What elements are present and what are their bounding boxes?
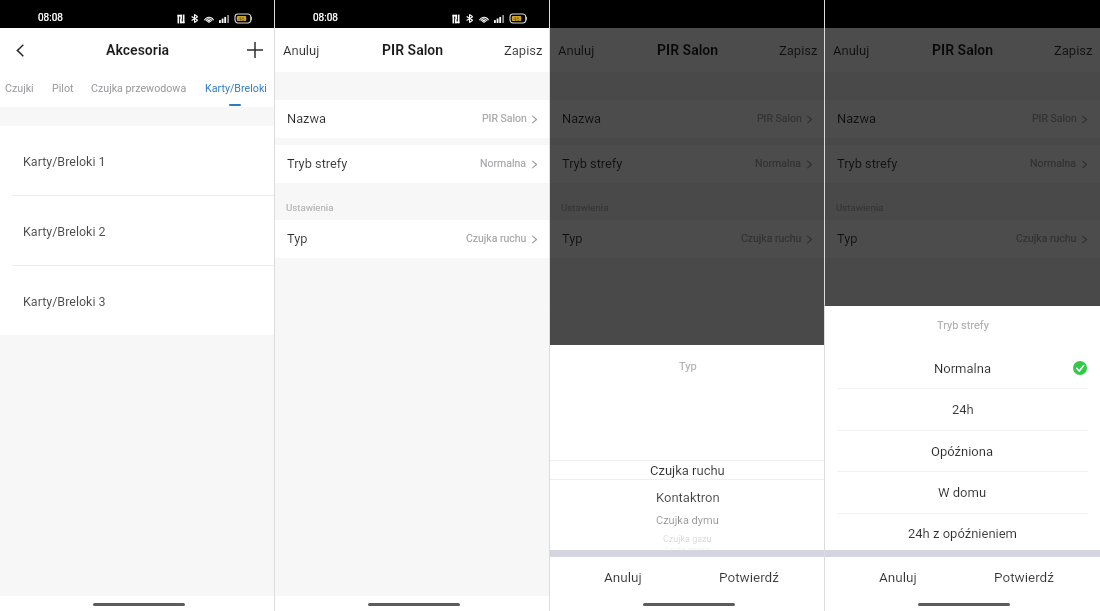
staticText: Potwierdź <box>994 569 1054 585</box>
staticText: 08:08 <box>313 12 338 24</box>
staticText: Nazwa <box>837 111 877 126</box>
staticText: PIR Salon <box>757 112 802 124</box>
staticText: Typ <box>679 360 697 373</box>
staticText: Ustawienia <box>836 202 884 213</box>
staticText: Czujka gazu <box>663 534 712 545</box>
button[interactable]: Karty/Breloki <box>201 72 271 107</box>
staticText: Anuluj <box>833 43 870 58</box>
staticText: Normalna <box>480 157 527 169</box>
staticText: Normalna <box>934 361 991 376</box>
staticText: Karty/Breloki 2 <box>23 224 106 239</box>
staticText: Potwierdź <box>719 569 779 585</box>
staticText: PIR Salon <box>932 42 994 58</box>
staticText: 24h <box>952 402 974 417</box>
button[interactable]: Anuluj <box>275 28 330 72</box>
button[interactable]: Tryb strefy <box>275 145 550 183</box>
button[interactable]: Nazwa <box>550 100 825 138</box>
staticText: PIR Salon <box>1032 112 1077 124</box>
staticText: 24h z opóźnieniem <box>908 526 1018 541</box>
staticText: Czujka ruchu <box>650 463 725 478</box>
staticText: Akcesoria <box>106 42 170 58</box>
staticText: Anuluj <box>558 43 595 58</box>
button[interactable]: Kontaktron <box>550 487 825 507</box>
staticText: Zapisz <box>504 43 543 58</box>
staticText: Czujka dymu <box>656 514 719 527</box>
button[interactable]: Czujka zalania <box>550 540 825 560</box>
button[interactable]: Zapisz <box>495 28 550 72</box>
staticText: Czujka ruchu <box>1016 232 1077 244</box>
button[interactable]: Czujka dymu <box>550 510 825 530</box>
staticText: Normalna <box>755 157 802 169</box>
button[interactable]: Potwierdź <box>699 561 799 595</box>
button[interactable]: Anuluj <box>573 561 673 595</box>
staticText: Typ <box>562 231 583 246</box>
button[interactable]: Normalna <box>825 348 1100 388</box>
staticText: Nazwa <box>287 111 327 126</box>
button[interactable]: W domu <box>825 472 1100 512</box>
staticText: Normalna <box>1030 157 1077 169</box>
button[interactable]: Zapisz <box>770 28 825 72</box>
staticText: PIR Salon <box>482 112 527 124</box>
button[interactable]: Nazwa <box>275 100 550 138</box>
button[interactable]: Nazwa <box>825 100 1100 138</box>
button[interactable]: Anuluj <box>550 28 605 72</box>
staticText: Tryb strefy <box>287 156 348 171</box>
staticText: Anuluj <box>604 569 642 585</box>
staticText: Opóźniona <box>931 444 994 459</box>
button[interactable]: Opóźniona <box>825 431 1100 471</box>
staticText: Tryb strefy <box>562 156 623 171</box>
button[interactable]: Karty/Breloki 1 <box>0 126 275 195</box>
staticText: Anuluj <box>283 43 320 58</box>
staticText: Typ <box>287 231 308 246</box>
staticText: Zapisz <box>1054 43 1093 58</box>
staticText: Pilot <box>52 82 74 95</box>
staticText: Karty/Breloki 3 <box>23 294 106 309</box>
staticText: 46 <box>513 15 520 22</box>
button[interactable]: Typ <box>275 220 550 258</box>
button[interactable]: Typ <box>825 220 1100 258</box>
button[interactable]: Czujka gazu <box>550 529 825 549</box>
staticText: Anuluj <box>879 569 917 585</box>
staticText: Tryb strefy <box>837 156 898 171</box>
button[interactable]: Anuluj <box>848 561 948 595</box>
button[interactable]: Typ <box>550 220 825 258</box>
staticText: Typ <box>837 231 858 246</box>
staticText: Czujka zalania <box>665 546 710 554</box>
button[interactable]: Potwierdź <box>974 561 1074 595</box>
staticText: PIR Salon <box>657 42 719 58</box>
staticText: Nazwa <box>562 111 602 126</box>
staticText: W domu <box>938 485 987 500</box>
button[interactable]: 24h <box>825 389 1100 429</box>
staticText: Ustawienia <box>561 202 609 213</box>
staticText: Karty/Breloki <box>205 82 267 95</box>
button[interactable]: Add <box>235 30 275 70</box>
button[interactable]: Back <box>0 30 40 70</box>
button[interactable]: 24h z opóźnieniem <box>825 513 1100 553</box>
staticText: Zapisz <box>779 43 818 58</box>
staticText: 08:08 <box>38 12 63 24</box>
button[interactable]: Karty/Breloki 3 <box>0 266 275 335</box>
staticText: Czujki <box>5 82 34 95</box>
staticText: Ustawienia <box>286 202 334 213</box>
staticText: Czujka przewodowa <box>91 82 187 95</box>
button[interactable]: Czujka przewodowa <box>89 72 189 107</box>
button[interactable]: Tryb strefy <box>825 145 1100 183</box>
button[interactable]: Pilot <box>47 72 79 107</box>
button[interactable]: Czujki <box>0 72 39 107</box>
staticText: PIR Salon <box>382 42 444 58</box>
staticText: Czujka ruchu <box>741 232 802 244</box>
staticText: Karty/Breloki 1 <box>23 154 106 169</box>
staticText: Tryb strefy <box>937 319 989 332</box>
button[interactable]: Zapisz <box>1045 28 1100 72</box>
button[interactable]: Anuluj <box>825 28 880 72</box>
staticText: Kontaktron <box>656 490 720 505</box>
staticText: Czujka ruchu <box>466 232 527 244</box>
button[interactable]: Karty/Breloki 2 <box>0 196 275 265</box>
button[interactable]: Tryb strefy <box>550 145 825 183</box>
staticText: 46 <box>238 15 245 22</box>
button[interactable]: Czujka ruchu <box>550 460 825 480</box>
